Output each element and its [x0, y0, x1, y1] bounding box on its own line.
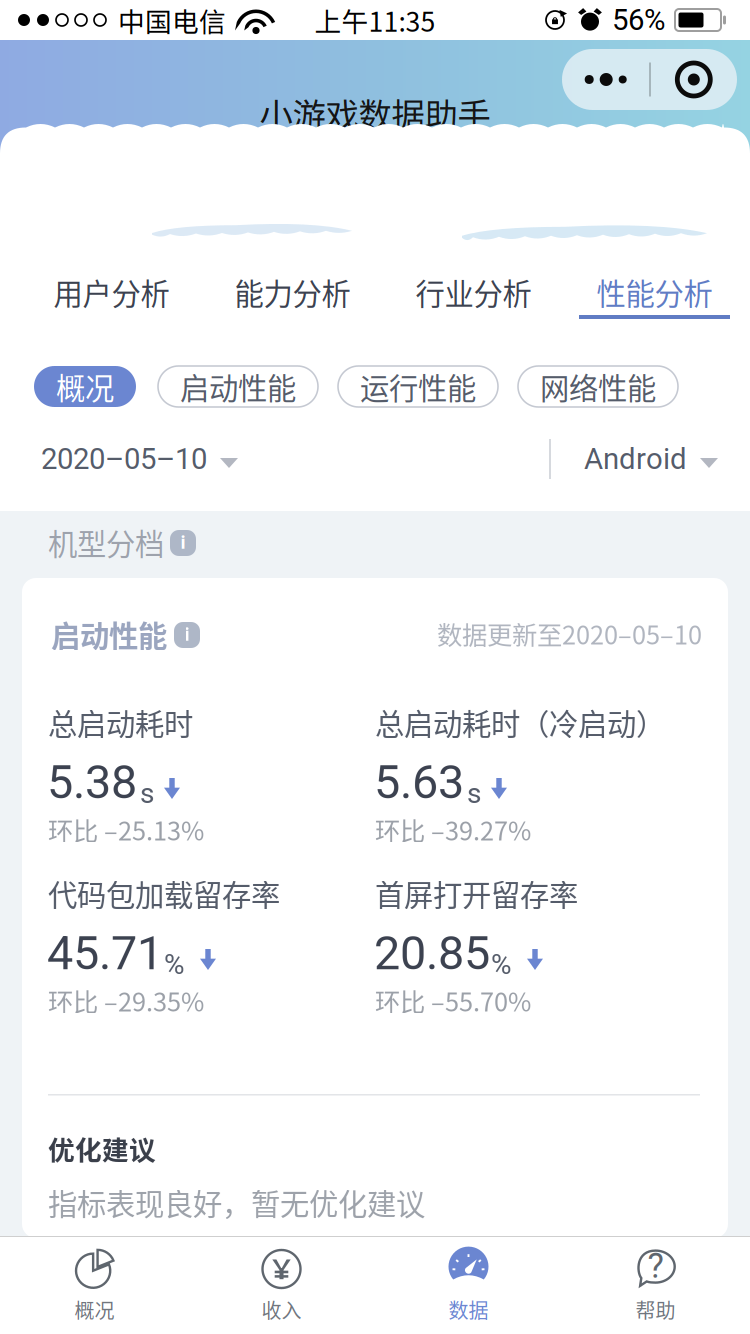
button[interactable]: 性能分析 [564, 261, 745, 319]
button[interactable]: 概况 [1, 1237, 188, 1333]
staticText: 收入 [261, 1295, 301, 1324]
button[interactable]: Android [584, 433, 718, 485]
staticText: 能力分析 [234, 271, 350, 313]
staticText: 56% [612, 3, 665, 37]
button[interactable]: 2020–05–10 [41, 433, 238, 485]
staticText: 数据更新至2020–05–10 [437, 615, 702, 652]
staticText: 帮助 [635, 1295, 675, 1324]
staticText: 启动性能 [51, 613, 167, 655]
staticText: % [491, 948, 512, 981]
staticText: i [180, 531, 185, 553]
staticText: 首屏打开留存率 [375, 872, 578, 914]
staticText: 性能分析 [596, 271, 712, 313]
staticText: 用户分析 [53, 271, 169, 313]
staticText: 数据 [448, 1295, 488, 1324]
button[interactable]: 网络性能 [518, 366, 678, 407]
staticText: 5.38 [47, 755, 137, 810]
button[interactable]: 启动性能 [158, 366, 318, 407]
button[interactable]: Close [651, 49, 737, 110]
staticText: 小游戏数据助手 [259, 89, 490, 137]
staticText: 概况 [56, 365, 114, 408]
staticText: 总启动耗时（冷启动） [375, 701, 665, 743]
staticText: 代码包加载留存率 [48, 872, 280, 914]
staticText: 环比 –39.27% [375, 811, 531, 848]
staticText: 网络性能 [540, 365, 656, 408]
button[interactable]: 运行性能 [338, 366, 498, 407]
button[interactable]: 能力分析 [202, 261, 383, 319]
staticText: 中国电信 [118, 1, 226, 39]
staticText: i [184, 623, 189, 645]
staticText: 环比 –25.13% [48, 811, 204, 848]
staticText: 优化建议 [48, 1129, 156, 1168]
staticText: 行业分析 [415, 271, 531, 313]
staticText: 指标表现良好，暂无优化建议 [48, 1181, 425, 1223]
staticText: 2020–05–10 [41, 442, 207, 476]
staticText: % [164, 948, 185, 981]
staticText: 5.63 [374, 755, 464, 810]
button[interactable]: 概况 [34, 366, 136, 407]
staticText: 启动性能 [180, 365, 296, 408]
staticText: Android [584, 442, 687, 476]
staticText: 20.85 [374, 926, 490, 981]
staticText: s [467, 777, 481, 810]
staticText: 45.71 [47, 926, 163, 981]
staticText: 总启动耗时 [48, 701, 193, 743]
staticText: 概况 [74, 1295, 114, 1324]
staticText: 运行性能 [360, 365, 476, 408]
staticText: 上午11:35 [314, 1, 435, 39]
staticText: 环比 –29.35% [48, 982, 204, 1019]
staticText: 环比 –55.70% [375, 982, 531, 1019]
button[interactable]: ? [562, 1237, 749, 1333]
staticText: s [140, 777, 154, 810]
button[interactable]: 用户分析 [21, 261, 202, 319]
button[interactable]: 收入 [188, 1237, 375, 1333]
staticText: ? [647, 1246, 663, 1286]
button[interactable]: 数据 [375, 1237, 562, 1333]
button[interactable]: More [562, 49, 649, 110]
button[interactable]: 行业分析 [383, 261, 564, 319]
staticText: 机型分档 [48, 521, 164, 563]
